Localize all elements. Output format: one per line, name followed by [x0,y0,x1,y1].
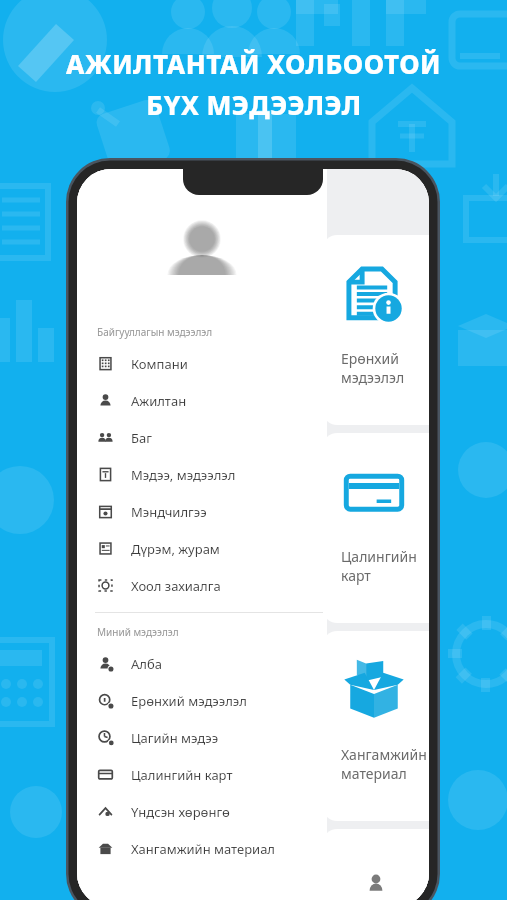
staticText: Хангамжийн материал [341,745,429,783]
button[interactable]: Ерөнхий мэдээлэл [77,682,327,719]
staticText: Ажилтан [131,392,187,410]
button[interactable]: Ажилтан [77,382,327,419]
button[interactable]: Цалингийн карт [77,756,327,793]
button[interactable]: Цалингийн карт [323,433,429,623]
staticText: АЖИЛТАНТАЙ ХОЛБООТОЙ [66,46,441,81]
staticText: Ерөнхий мэдээлэл [341,349,429,387]
button[interactable]: Хангамжийн материал [323,631,429,821]
button[interactable]: Profile tab [323,859,429,900]
staticText: Мэндчилгээ [131,503,207,521]
staticText: Цалингийн карт [131,766,233,784]
staticText: Миний мэдээлэл [97,625,179,639]
button[interactable]: Дүрэм, журам [77,530,327,567]
staticText: Хоол захиалга [131,577,221,595]
staticText: Байгууллагын мэдээлэл [97,325,213,339]
button[interactable]: Баг [77,419,327,456]
staticText: Цалингийн карт [341,547,429,585]
button[interactable]: Үндсэн хөрөнгө [77,793,327,830]
button[interactable]: Цагийн мэдээ [77,719,327,756]
button[interactable]: Мэндчилгээ [77,493,327,530]
staticText: Ерөнхий мэдээлэл [131,692,247,710]
button[interactable]: Хангамжийн материал [77,830,327,867]
button[interactable]: Хоол захиалга [77,567,327,604]
button[interactable]: Сургалт [323,829,429,900]
button[interactable]: Мэдээ, мэдээлэл [77,456,327,493]
button[interactable]: Компани [77,345,327,382]
staticText: Компани [131,355,188,373]
staticText: Мэдээ, мэдээлэл [131,466,236,484]
staticText: Алба [131,655,162,673]
staticText: Дүрэм, журам [131,540,220,558]
staticText: БҮХ МЭДЭЭЛЭЛ [146,87,362,122]
button[interactable]: Алба [77,645,327,682]
staticText: Хангамжийн материал [131,840,276,858]
staticText: Цагийн мэдээ [131,729,219,747]
staticText: Үндсэн хөрөнгө [131,803,230,821]
staticText: Баг [131,429,152,447]
button[interactable]: Ерөнхий мэдээлэл [323,235,429,425]
